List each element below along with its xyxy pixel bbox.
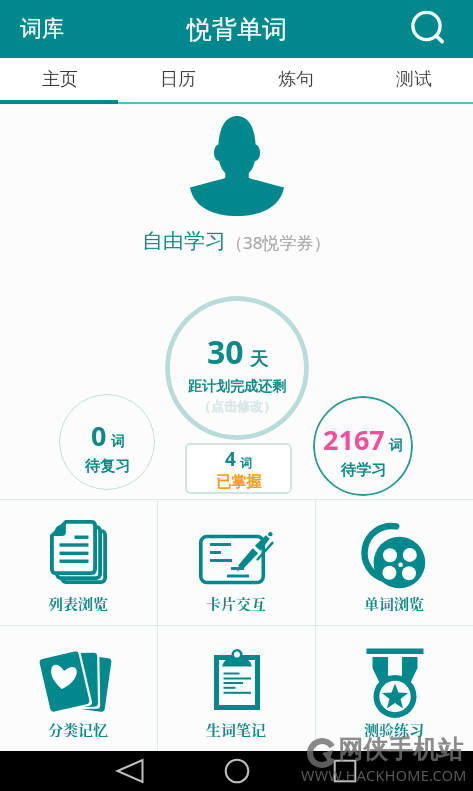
staticText: （38悦学券） xyxy=(226,231,331,254)
staticText: 悦背单词 xyxy=(187,14,287,45)
button[interactable]: Search xyxy=(404,5,452,53)
staticText: 30 xyxy=(207,330,244,374)
button[interactable]: 列表浏览 xyxy=(0,500,157,625)
staticText: 单词浏览 xyxy=(364,593,425,611)
button[interactable]: 分类记忆 xyxy=(0,626,157,751)
staticText: 卡片交互 xyxy=(206,593,267,611)
staticText: 词 xyxy=(111,433,125,451)
button[interactable]: 主页 xyxy=(0,58,119,104)
staticText: 4 xyxy=(225,446,236,472)
button[interactable]: 炼句 xyxy=(237,58,355,104)
staticText: 生词笔记 xyxy=(206,719,267,737)
button[interactable]: 测试 xyxy=(355,58,473,104)
staticText: 天 xyxy=(250,348,268,371)
button[interactable]: 测验练习 xyxy=(316,626,473,751)
button[interactable]: 日历 xyxy=(119,58,237,104)
button[interactable]: 2167 xyxy=(313,396,413,496)
button[interactable]: Back xyxy=(110,751,150,791)
button[interactable]: 4 xyxy=(185,443,292,494)
button[interactable]: Home xyxy=(217,751,257,791)
staticText: 2167 xyxy=(323,421,385,458)
button[interactable]: Recents xyxy=(325,751,365,791)
staticText: 列表浏览 xyxy=(48,593,109,611)
staticText: 待复习 xyxy=(85,457,130,476)
button[interactable]: 0 xyxy=(59,394,155,490)
button[interactable]: 词库 xyxy=(6,0,78,58)
button[interactable]: 30 xyxy=(165,296,309,440)
staticText: 已掌握 xyxy=(216,473,261,492)
button[interactable]: 单词浏览 xyxy=(316,500,473,625)
staticText: 词 xyxy=(389,437,403,455)
staticText: WWW.HACKHOME.COM xyxy=(301,766,467,786)
staticText: 网侠手机站 xyxy=(338,734,463,765)
staticText: 词库 xyxy=(20,15,64,43)
staticText: 0 xyxy=(91,417,107,454)
staticText: 测验练习 xyxy=(364,719,425,737)
button[interactable]: 生词笔记 xyxy=(158,626,315,751)
staticText: （点击修改） xyxy=(198,398,276,414)
staticText: 待学习 xyxy=(341,461,386,480)
staticText: 测试 xyxy=(396,68,432,91)
staticText: 距计划完成还剩 xyxy=(188,378,286,396)
staticText: 日历 xyxy=(160,68,196,91)
staticText: 分类记忆 xyxy=(48,719,109,737)
button[interactable]: 卡片交互 xyxy=(158,500,315,625)
staticText: 炼句 xyxy=(278,68,314,91)
staticText: 自由学习 xyxy=(142,228,226,254)
staticText: 主页 xyxy=(42,68,78,91)
staticText: 词 xyxy=(240,455,252,470)
